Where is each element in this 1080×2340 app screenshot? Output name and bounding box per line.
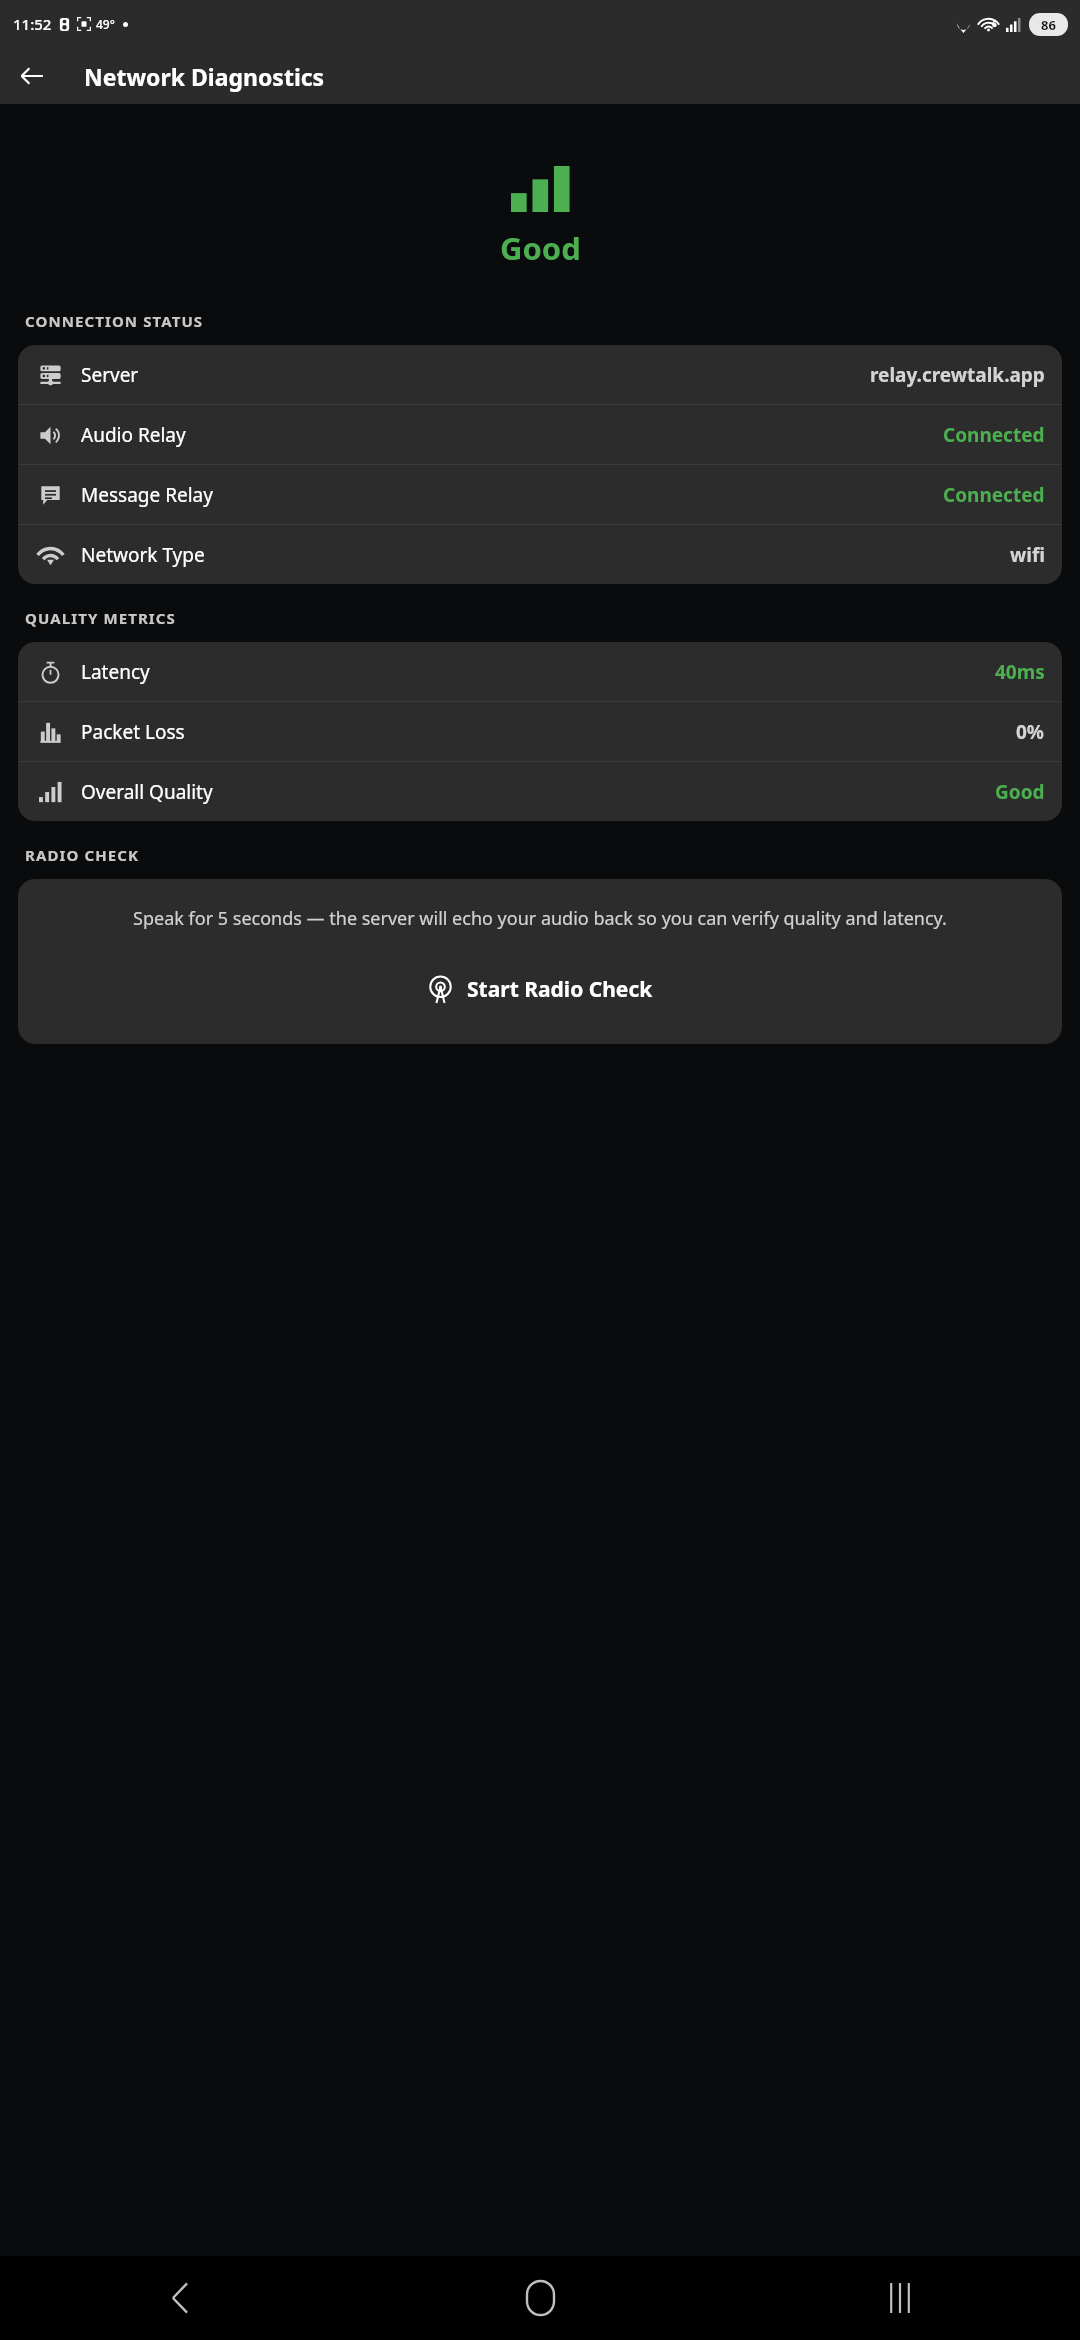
staticText: relay.crewtalk.app [870, 362, 1045, 388]
staticText: 6 [992, 18, 997, 29]
staticText: Packet Loss [81, 719, 185, 745]
staticText: RADIO CHECK [25, 845, 139, 865]
staticText: Overall Quality [81, 779, 213, 805]
button[interactable]: Network Type [18, 525, 1062, 584]
button[interactable]: Latency [18, 642, 1062, 701]
staticText: wifi [1010, 542, 1045, 568]
button[interactable]: Server [18, 345, 1062, 404]
staticText: Connected [943, 422, 1045, 448]
button[interactable]: Back [8, 52, 56, 100]
staticText: 11:52 [13, 14, 52, 34]
other: Signal strength good [511, 166, 569, 212]
button[interactable]: Overall Quality [18, 762, 1062, 821]
staticText: Network Diagnostics [84, 61, 325, 92]
staticText: Audio Relay [81, 422, 186, 448]
staticText: Message Relay [81, 482, 213, 508]
staticText: 86 [1041, 16, 1056, 34]
staticText: Good [995, 779, 1045, 805]
staticText: Start Radio Check [467, 975, 653, 1004]
staticText: 49° [96, 16, 115, 32]
staticText: Server [81, 362, 139, 388]
staticText: Good [500, 227, 581, 269]
button[interactable]: Message Relay [18, 465, 1062, 524]
button[interactable]: Start Radio Check [18, 958, 1062, 1020]
staticText: Network Type [81, 542, 205, 568]
staticText: Latency [81, 659, 150, 685]
staticText: Speak for 5 seconds — the server will ec… [40, 906, 1040, 931]
staticText: CONNECTION STATUS [25, 311, 204, 331]
staticText: QUALITY METRICS [25, 608, 176, 628]
button[interactable]: Recent apps [720, 2256, 1080, 2340]
button[interactable]: Audio Relay [18, 405, 1062, 464]
staticText: 40ms [995, 659, 1045, 685]
button[interactable]: Back [0, 2256, 360, 2340]
staticText: 0% [1016, 719, 1045, 745]
button[interactable]: Packet Loss [18, 702, 1062, 761]
staticText: Connected [943, 482, 1045, 508]
button[interactable]: Home [360, 2256, 720, 2340]
